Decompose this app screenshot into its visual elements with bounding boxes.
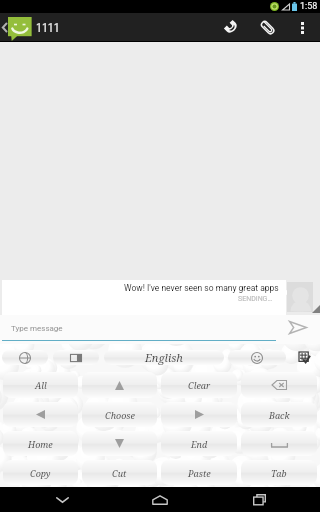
button[interactable] (82, 431, 157, 456)
button[interactable]: 1111 (0, 13, 64, 42)
button[interactable] (53, 350, 99, 365)
button[interactable]: Choose (82, 402, 157, 427)
button[interactable]: Back (241, 402, 317, 427)
button[interactable] (82, 372, 157, 398)
button[interactable]: Send (276, 315, 320, 344)
button[interactable] (2, 350, 48, 365)
staticText: Paste (188, 467, 211, 479)
staticText: Home (28, 438, 53, 450)
button[interactable]: Type message (0, 315, 276, 344)
button[interactable]: Cut (82, 460, 157, 485)
button[interactable]: Recent apps (222, 487, 296, 512)
button[interactable] (228, 350, 286, 365)
button[interactable] (161, 402, 237, 427)
staticText: 1111 (36, 21, 60, 35)
button[interactable]: Home (123, 487, 197, 512)
staticText: 1:58 (300, 1, 318, 12)
button[interactable] (241, 431, 317, 456)
staticText: Clear (188, 379, 211, 391)
staticText: All (35, 379, 47, 391)
staticText: English (145, 350, 183, 365)
staticText: Copy (30, 467, 51, 479)
staticText: Choose (105, 409, 135, 421)
button[interactable]: Paste (161, 460, 237, 485)
staticText: Type message (11, 324, 63, 333)
staticText: Wow! I've never seen so many great apps (124, 283, 279, 293)
button[interactable]: Hide keyboard (25, 487, 99, 512)
button[interactable]: More options (285, 13, 320, 42)
button[interactable]: Home (3, 431, 78, 456)
staticText: SENDING… (238, 295, 273, 303)
button[interactable]: English (104, 350, 224, 365)
button[interactable]: Wow! I've never seen so many great apps (2, 280, 286, 315)
staticText: Tab (271, 467, 287, 479)
button[interactable] (241, 372, 317, 398)
button[interactable]: Copy (3, 460, 78, 485)
button[interactable] (3, 402, 78, 427)
button[interactable]: Call (213, 13, 250, 42)
staticText: Back (269, 409, 290, 421)
button[interactable]: Clear (161, 372, 237, 398)
button[interactable]: Tab (241, 460, 317, 485)
button[interactable]: End (161, 431, 237, 456)
button[interactable]: Switch input method (291, 350, 318, 365)
button[interactable]: Attach (250, 13, 285, 42)
staticText: Cut (112, 467, 127, 479)
button[interactable]: All (3, 372, 78, 398)
staticText: End (191, 438, 208, 450)
